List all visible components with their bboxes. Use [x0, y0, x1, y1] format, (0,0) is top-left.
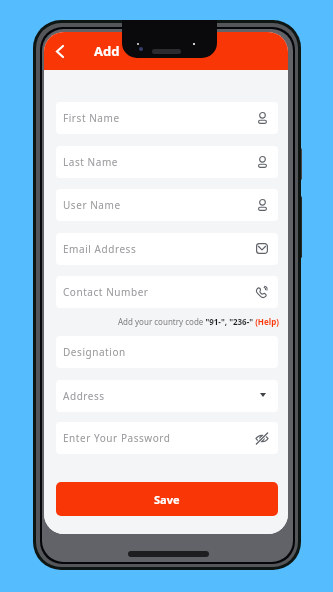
- button[interactable]: First Name: [56, 102, 278, 134]
- staticText: User Name: [63, 198, 253, 212]
- staticText: Add your country code "91-", "236-" (Hel…: [118, 316, 279, 327]
- staticText: First Name: [63, 111, 253, 125]
- button[interactable]: Save: [56, 482, 278, 516]
- staticText: Designation: [63, 345, 253, 359]
- staticText: Add: [94, 42, 120, 60]
- button[interactable]: Back: [47, 38, 73, 64]
- staticText: Save: [154, 492, 180, 507]
- staticText: Email Address: [63, 242, 253, 256]
- button[interactable]: Enter Your Password: [56, 422, 278, 454]
- staticText: Enter Your Password: [63, 431, 253, 445]
- button[interactable]: Last Name: [56, 146, 278, 178]
- button[interactable]: Address: [56, 380, 278, 412]
- staticText: Last Name: [63, 155, 253, 169]
- button[interactable]: Email Address: [56, 233, 278, 265]
- button[interactable]: User Name: [56, 189, 278, 221]
- staticText: Contact Number: [63, 285, 253, 299]
- button[interactable]: Designation: [56, 336, 278, 368]
- staticText: Address: [63, 389, 253, 403]
- button[interactable]: Contact Number: [56, 276, 278, 308]
